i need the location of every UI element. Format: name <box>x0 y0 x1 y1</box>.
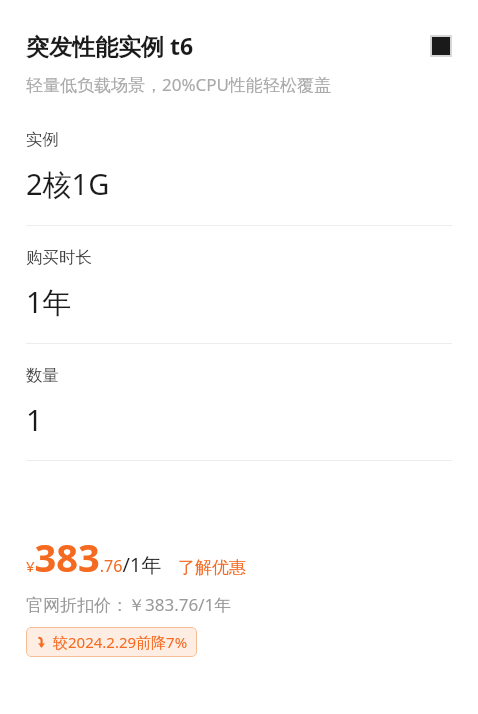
staticText: 2核1G <box>26 164 110 204</box>
button[interactable]: 了解优惠 <box>178 557 246 583</box>
staticText: 较2024.2.29前降7% <box>53 632 188 652</box>
button[interactable]: Select instance <box>430 35 452 57</box>
staticText: 实例 <box>26 129 59 150</box>
staticText: 轻量低负载场景，20%CPU性能轻松覆盖 <box>26 73 332 96</box>
staticText: ¥383.76/1年 <box>26 531 162 583</box>
staticText: 1 <box>26 400 43 439</box>
button[interactable]: 较2024.2.29前降7% <box>26 627 197 657</box>
staticText: 了解优惠 <box>178 557 246 578</box>
staticText: 突发性能实例 t6 <box>26 30 430 61</box>
staticText: 1年 <box>26 282 72 322</box>
staticText: 购买时长 <box>26 247 92 268</box>
staticText: 数量 <box>26 365 59 386</box>
staticText: 官网折扣价：￥383.76/1年 <box>26 593 232 616</box>
